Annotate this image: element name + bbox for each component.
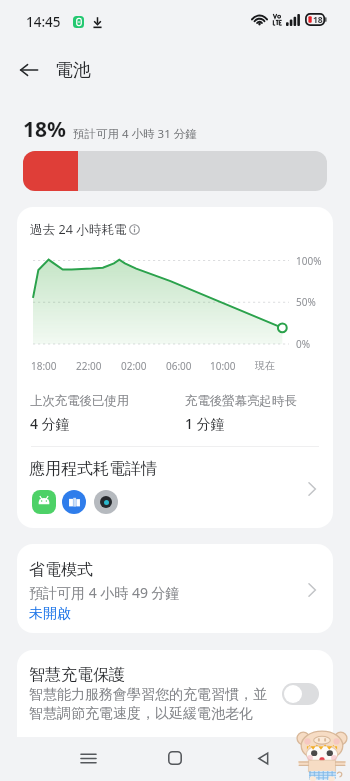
staticText: 充電後螢幕亮起時長	[185, 393, 297, 409]
staticText: 10:00	[210, 359, 236, 373]
staticText: 50%	[296, 295, 316, 309]
staticText: 預計可用 4 小時 31 分鐘	[73, 126, 197, 142]
staticText: 1 分鐘	[185, 414, 225, 433]
staticText: 22:00	[76, 359, 102, 373]
staticText: 06:00	[166, 359, 192, 373]
staticText: 100%	[296, 254, 322, 268]
staticText: 過去 24 小時耗電	[30, 221, 127, 238]
staticText: 14:45	[26, 13, 61, 31]
staticText: 未開啟	[29, 605, 71, 623]
staticText: 上次充電後已使用	[30, 393, 130, 409]
staticText: 應用程式耗電詳情	[29, 459, 157, 479]
button[interactable]: 省電模式	[17, 544, 333, 633]
staticText: 預計可用 4 小時 49 分鐘	[29, 583, 180, 602]
staticText: 電池	[55, 59, 91, 82]
button[interactable]: Home	[153, 736, 197, 780]
staticText: 4 分鐘	[30, 414, 70, 433]
button[interactable]: Back	[9, 50, 49, 90]
staticText: 18%	[23, 115, 66, 144]
staticText: 18:00	[31, 359, 57, 373]
button[interactable]: 應用程式耗電詳情	[17, 447, 333, 527]
button[interactable]: Toggle smart charging	[282, 683, 319, 705]
button[interactable]: Back	[241, 736, 285, 780]
staticText: 智慧充電保護	[29, 665, 125, 685]
staticText: 現在	[255, 359, 275, 372]
staticText: 智慧能力服務會學習您的充電習慣，並智慧調節充電速度，以延緩電池老化	[29, 686, 271, 722]
staticText: 18	[313, 14, 323, 26]
staticText: 02:00	[121, 359, 147, 373]
staticText: 省電模式	[29, 560, 93, 580]
staticText: 0%	[296, 337, 311, 351]
button[interactable]: Recents	[66, 736, 110, 780]
